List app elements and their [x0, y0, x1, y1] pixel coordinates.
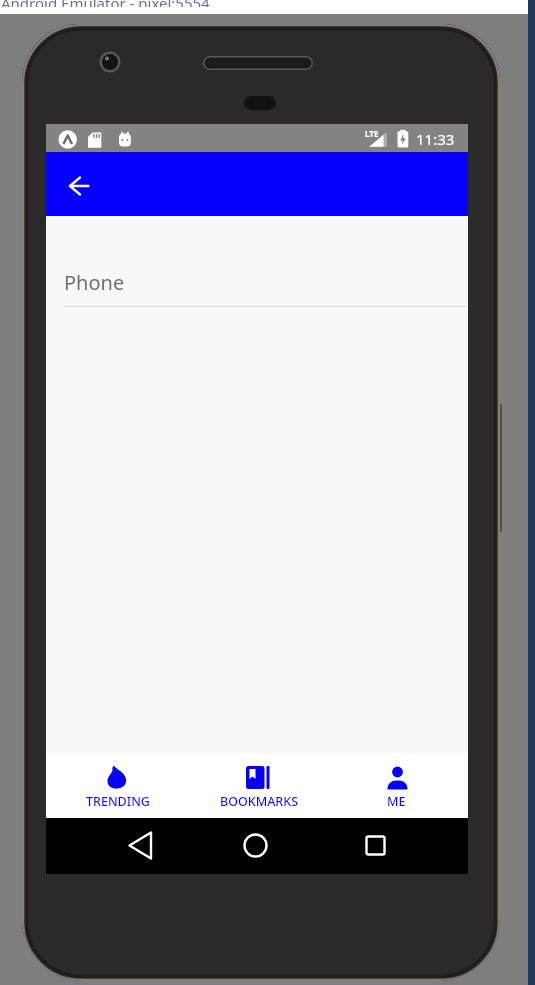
button[interactable]: [207, 818, 307, 874]
button[interactable]: BOOKMARKS: [187, 753, 327, 818]
staticText: TRENDING: [86, 793, 150, 810]
button[interactable]: [58, 170, 86, 198]
button[interactable]: TRENDING: [47, 753, 187, 818]
staticText: 11:33: [416, 129, 455, 149]
staticText: Phone: [64, 269, 125, 296]
button[interactable]: ME: [327, 753, 468, 818]
button[interactable]: [106, 818, 206, 874]
staticText: LTE: [365, 128, 379, 139]
button[interactable]: [308, 818, 408, 874]
staticText: Android Emulator - pixel:5554: [1, 0, 210, 7]
staticText: ME: [387, 793, 406, 810]
staticText: BOOKMARKS: [220, 793, 299, 810]
